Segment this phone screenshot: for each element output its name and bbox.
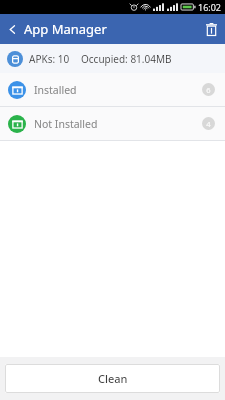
staticText: Installed [34, 83, 77, 97]
button[interactable]: Not Installed [0, 107, 225, 140]
button[interactable]: App Manager [0, 16, 113, 42]
button[interactable]: Clean [5, 364, 220, 393]
staticText: Clean [98, 371, 128, 386]
staticText: APKs: 10 [29, 52, 70, 66]
button[interactable]: Installed [0, 73, 225, 106]
staticText: 16:02 [198, 1, 222, 13]
staticText: App Manager [24, 20, 107, 38]
staticText: Occupied: 81.04MB [81, 52, 172, 66]
staticText: 6 [206, 85, 211, 95]
button[interactable]: Delete [198, 17, 225, 42]
staticText: Not Installed [34, 117, 98, 131]
staticText: 4 [206, 119, 211, 129]
